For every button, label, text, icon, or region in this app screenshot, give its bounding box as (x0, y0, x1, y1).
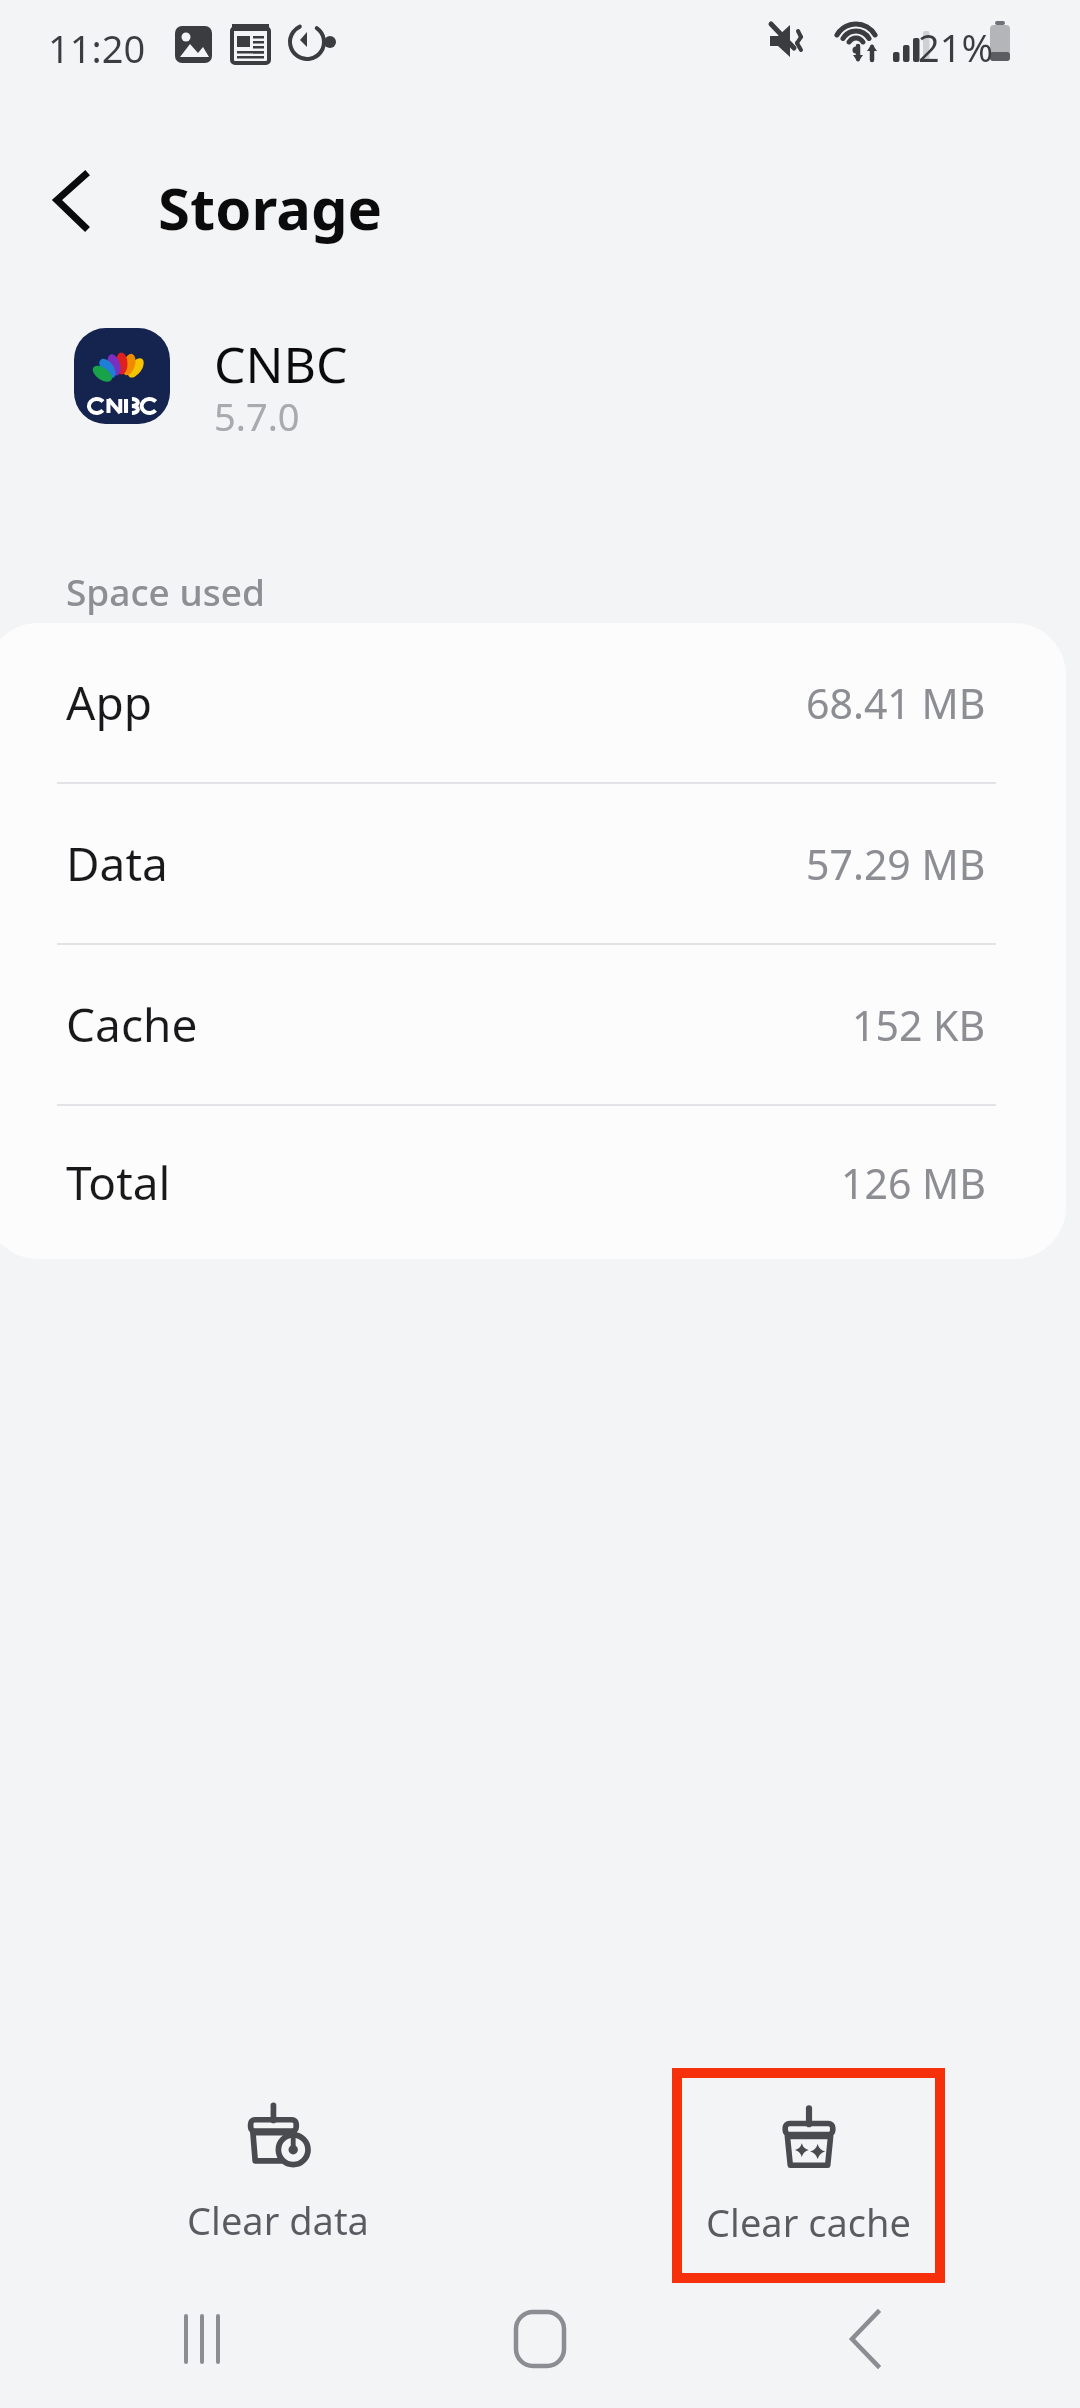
staticText: 152 KB (852, 997, 986, 1053)
staticText: Clear data (187, 2194, 369, 2246)
button[interactable]: Recents (160, 2296, 270, 2382)
staticText: Clear cache (706, 2196, 911, 2248)
button[interactable]: Back (30, 155, 120, 245)
staticText: 5.7.0 (214, 390, 300, 442)
button[interactable]: Cache (0, 945, 1066, 1104)
staticText: Data (66, 832, 168, 895)
staticText: Storage (158, 168, 383, 247)
staticText: Space used (66, 566, 265, 616)
button[interactable]: Clear data (150, 2100, 405, 2260)
staticText: 57.29 MB (806, 836, 986, 892)
button[interactable]: Back (810, 2296, 920, 2382)
button[interactable]: App (0, 623, 1066, 782)
staticText: CNBC (214, 330, 348, 398)
button[interactable]: Clear cache (682, 2078, 935, 2273)
staticText: 126 MB (841, 1155, 986, 1211)
staticText: App (66, 671, 152, 734)
staticText: 68.41 MB (806, 675, 986, 731)
button[interactable]: Home (485, 2296, 595, 2382)
staticText: Cache (66, 993, 198, 1056)
staticText: Total (66, 1151, 171, 1214)
button[interactable]: Total (0, 1106, 1066, 1259)
staticText: 11:20 (48, 22, 146, 74)
button[interactable]: Data (0, 784, 1066, 943)
staticText: 21% (918, 21, 994, 73)
